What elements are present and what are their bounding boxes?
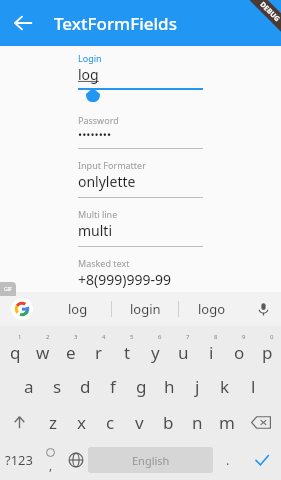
staticText: l: [251, 375, 256, 398]
staticText: v: [135, 411, 144, 434]
staticText: 3: [74, 333, 78, 341]
button[interactable]: logo: [179, 292, 245, 326]
staticText: Input Formatter: [78, 159, 146, 171]
staticText: log: [68, 300, 88, 318]
staticText: Login: [78, 52, 102, 64]
button[interactable]: h: [155, 368, 183, 404]
button[interactable]: 0: [253, 328, 281, 368]
staticText: d: [80, 375, 91, 398]
button[interactable]: English: [88, 447, 213, 473]
staticText: English: [132, 453, 170, 468]
staticText: 6: [158, 333, 162, 341]
staticText: e: [66, 341, 76, 364]
button[interactable]: .: [213, 440, 243, 480]
button[interactable]: 5: [113, 328, 141, 368]
staticText: y: [151, 341, 160, 364]
staticText: x: [77, 411, 86, 434]
button[interactable]: k: [211, 368, 239, 404]
staticText: q: [10, 341, 21, 364]
button[interactable]: Multi line: [78, 208, 203, 257]
staticText: 7: [186, 333, 190, 341]
button[interactable]: 6: [141, 328, 169, 368]
staticText: 9: [242, 333, 246, 341]
staticText: 8: [214, 333, 218, 341]
staticText: +8(999)999-99: [78, 270, 171, 289]
staticText: m: [219, 411, 235, 434]
button[interactable]: Input Formatter: [78, 159, 203, 208]
staticText: p: [262, 341, 273, 364]
button[interactable]: Voice input: [245, 292, 281, 326]
staticText: t: [124, 341, 131, 364]
button[interactable]: 8: [197, 328, 225, 368]
staticText: 1: [18, 333, 22, 341]
button[interactable]: f: [99, 368, 127, 404]
button[interactable]: 3: [57, 328, 85, 368]
staticText: onlylette: [78, 172, 136, 191]
staticText: 5: [130, 333, 134, 341]
staticText: i: [209, 341, 214, 364]
staticText: r: [95, 341, 103, 364]
staticText: g: [136, 375, 147, 398]
staticText: TextFormFields: [54, 12, 177, 35]
staticText: j: [195, 375, 200, 398]
staticText: f: [110, 375, 116, 398]
button[interactable]: m: [212, 404, 241, 440]
button[interactable]: Google: [0, 292, 44, 326]
button[interactable]: d: [71, 368, 99, 404]
staticText: o: [234, 341, 245, 364]
button[interactable]: 4: [85, 328, 113, 368]
staticText: b: [163, 411, 174, 434]
button[interactable]: v: [125, 404, 154, 440]
button[interactable]: ?123: [0, 440, 38, 480]
staticText: a: [24, 375, 34, 398]
staticText: k: [220, 375, 230, 398]
staticText: ,: [49, 457, 53, 473]
staticText: 0: [270, 333, 274, 341]
staticText: ?123: [5, 451, 33, 469]
staticText: Masked text: [78, 257, 130, 269]
staticText: w: [36, 341, 50, 364]
staticText: h: [164, 375, 175, 398]
button[interactable]: Change language: [63, 440, 88, 480]
button[interactable]: a: [14, 368, 43, 404]
button[interactable]: Backspace: [241, 404, 281, 440]
staticText: log: [78, 65, 99, 84]
button[interactable]: Masked text: [78, 257, 203, 292]
button[interactable]: n: [183, 404, 212, 440]
button[interactable]: s: [43, 368, 71, 404]
staticText: ••••••••: [78, 127, 112, 142]
staticText: z: [49, 411, 57, 434]
button[interactable]: g: [127, 368, 155, 404]
button[interactable]: x: [67, 404, 96, 440]
button[interactable]: c: [96, 404, 125, 440]
button[interactable]: b: [154, 404, 183, 440]
button[interactable]: l: [239, 368, 267, 404]
button[interactable]: login: [112, 292, 178, 326]
staticText: n: [192, 411, 203, 434]
staticText: Password: [78, 114, 119, 126]
staticText: Multi line: [78, 208, 118, 220]
staticText: 4: [102, 333, 106, 341]
button[interactable]: z: [39, 404, 67, 440]
button[interactable]: log: [44, 292, 111, 326]
staticText: multi: [78, 221, 113, 240]
button[interactable]: 7: [169, 328, 197, 368]
button[interactable]: Password: [78, 114, 203, 159]
staticText: DEBUG: [258, 0, 281, 24]
button[interactable]: j: [183, 368, 211, 404]
button[interactable]: Emoji: [38, 440, 63, 480]
staticText: c: [106, 411, 115, 434]
staticText: .: [226, 451, 230, 469]
staticText: u: [178, 341, 189, 364]
staticText: s: [53, 375, 62, 398]
button[interactable]: 2: [29, 328, 57, 368]
staticText: login: [130, 300, 161, 318]
button[interactable]: Shift: [0, 404, 39, 440]
staticText: logo: [198, 300, 226, 318]
button[interactable]: 1: [0, 328, 29, 368]
button[interactable]: 9: [225, 328, 253, 368]
button[interactable]: Done: [243, 440, 281, 480]
button[interactable]: Back: [0, 0, 46, 46]
staticText: GIF: [4, 286, 12, 293]
button[interactable]: log: [78, 65, 203, 84]
